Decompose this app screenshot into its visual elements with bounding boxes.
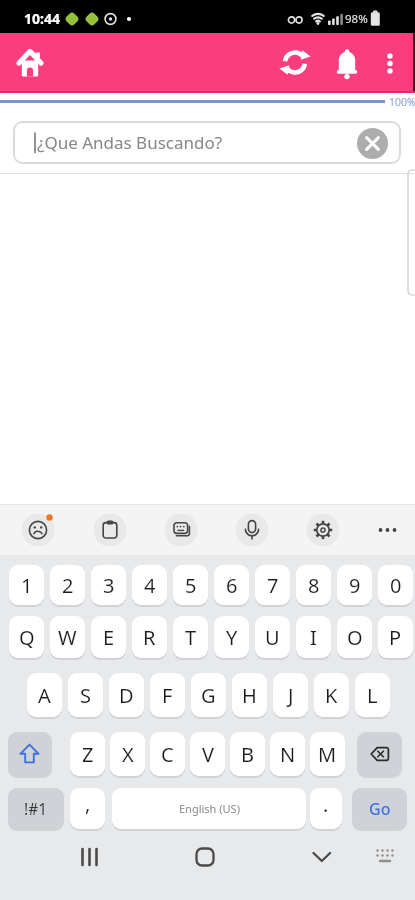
button[interactable]: Go <box>352 788 407 829</box>
staticText: I <box>310 624 317 651</box>
staticText: Go <box>369 798 391 820</box>
button[interactable]: N <box>270 732 305 776</box>
button[interactable] <box>12 43 56 87</box>
staticText: E <box>103 624 115 651</box>
button[interactable]: 5 <box>173 565 208 605</box>
button[interactable]: O <box>337 616 372 658</box>
staticText: Z <box>82 741 94 768</box>
button[interactable] <box>88 508 132 552</box>
button[interactable]: K <box>314 673 349 717</box>
staticText: N <box>280 741 296 768</box>
button[interactable] <box>357 128 388 159</box>
staticText: 10:44 <box>24 9 60 28</box>
button[interactable]: 1 <box>9 565 44 605</box>
button[interactable]: B <box>230 732 265 776</box>
button[interactable]: R <box>132 616 167 658</box>
staticText: ¿Que Andas Buscando? <box>37 131 223 154</box>
button[interactable]: P <box>378 616 413 658</box>
button[interactable]: 4 <box>132 565 167 605</box>
button[interactable]: J <box>273 673 308 717</box>
button[interactable] <box>357 732 402 776</box>
staticText: !#1 <box>24 798 48 819</box>
button[interactable]: 6 <box>214 565 249 605</box>
button[interactable] <box>325 41 369 85</box>
staticText: 0 <box>390 572 402 599</box>
staticText: 8 <box>308 572 320 599</box>
button[interactable] <box>159 508 203 552</box>
staticText: 4 <box>144 572 156 599</box>
staticText: 98% <box>345 11 368 27</box>
staticText: S <box>80 682 91 709</box>
button[interactable] <box>230 508 274 552</box>
button[interactable]: I <box>296 616 331 658</box>
staticText: F <box>162 682 173 709</box>
button[interactable]: !#1 <box>8 788 64 829</box>
button[interactable]: U <box>255 616 290 658</box>
button[interactable]: Y <box>214 616 249 658</box>
staticText: . <box>323 791 329 818</box>
button[interactable]: S <box>68 673 103 717</box>
staticText: C <box>161 741 174 768</box>
staticText: M <box>318 741 337 768</box>
staticText: 1 <box>21 572 33 599</box>
staticText: W <box>58 624 77 651</box>
staticText: Y <box>226 624 238 651</box>
staticText: 3 <box>103 572 115 599</box>
button[interactable]: T <box>173 616 208 658</box>
staticText: T <box>185 624 197 651</box>
staticText: 9 <box>349 572 361 599</box>
staticText: D <box>119 682 134 709</box>
staticText: G <box>201 682 216 709</box>
button[interactable] <box>301 508 345 552</box>
button[interactable] <box>181 835 229 879</box>
button[interactable]: English (US) <box>112 788 306 829</box>
staticText: H <box>242 682 257 709</box>
button[interactable]: A <box>27 673 62 717</box>
button[interactable]: L <box>355 673 390 717</box>
button[interactable] <box>8 732 52 776</box>
button[interactable]: X <box>110 732 145 776</box>
button[interactable]: , <box>70 788 105 829</box>
button[interactable] <box>372 41 408 85</box>
button[interactable]: 9 <box>337 565 372 605</box>
button[interactable]: 0 <box>378 565 413 605</box>
staticText: English (US) <box>179 801 240 816</box>
button[interactable]: 2 <box>50 565 85 605</box>
button[interactable]: W <box>50 616 85 658</box>
button[interactable]: V <box>190 732 225 776</box>
button[interactable]: F <box>150 673 185 717</box>
staticText: R <box>143 624 156 651</box>
staticText: 2 <box>62 572 74 599</box>
button[interactable]: D <box>109 673 144 717</box>
button[interactable]: 3 <box>91 565 126 605</box>
staticText: U <box>265 624 280 651</box>
staticText: P <box>389 624 402 651</box>
button[interactable] <box>363 835 407 879</box>
button[interactable]: E <box>91 616 126 658</box>
staticText: B <box>241 741 254 768</box>
button[interactable]: C <box>150 732 185 776</box>
button[interactable]: 8 <box>296 565 331 605</box>
staticText: 6 <box>226 572 238 599</box>
button[interactable] <box>16 508 60 552</box>
staticText: , <box>85 790 91 817</box>
button[interactable]: 7 <box>255 565 290 605</box>
button[interactable]: M <box>310 732 345 776</box>
button[interactable]: H <box>232 673 267 717</box>
staticText: L <box>367 682 378 709</box>
staticText: X <box>122 741 134 768</box>
button[interactable] <box>273 41 317 85</box>
staticText: O <box>347 624 363 651</box>
button[interactable]: Z <box>70 732 105 776</box>
staticText: 5 <box>185 572 197 599</box>
staticText: Q <box>19 624 35 651</box>
button[interactable]: . <box>310 788 342 829</box>
button[interactable] <box>298 835 346 879</box>
staticText: V <box>202 741 214 768</box>
button[interactable] <box>366 508 410 552</box>
button[interactable]: ¿Que Andas Buscando? <box>13 121 401 164</box>
button[interactable]: Q <box>9 616 44 658</box>
button[interactable] <box>66 835 114 879</box>
button[interactable]: G <box>191 673 226 717</box>
staticText: J <box>288 682 294 709</box>
